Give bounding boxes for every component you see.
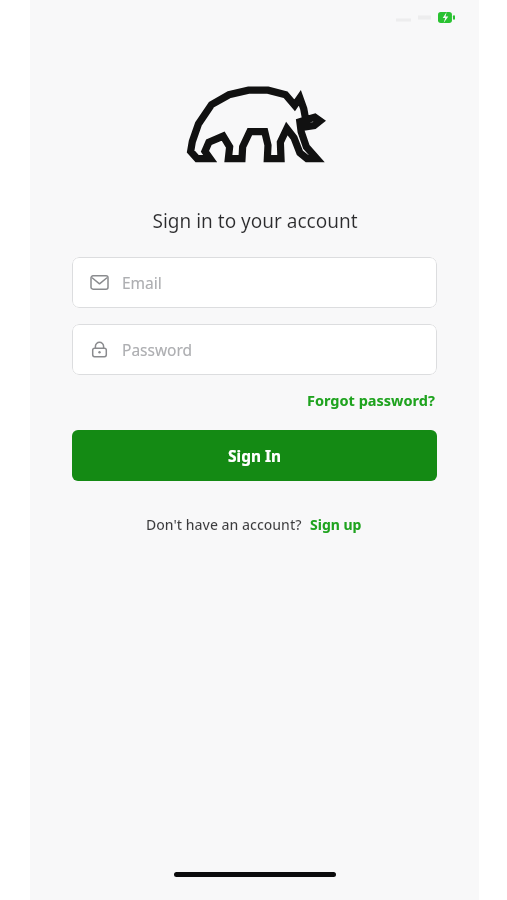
staticText: Don't have an account? bbox=[146, 515, 302, 534]
staticText: Forgot password? bbox=[307, 390, 435, 410]
button[interactable]: Sign up bbox=[308, 512, 364, 537]
other: Password bbox=[91, 341, 108, 358]
other: Email bbox=[91, 274, 108, 291]
button[interactable]: Sign In bbox=[72, 430, 437, 481]
staticText: Email bbox=[122, 272, 162, 293]
staticText: Sign in to your account bbox=[152, 208, 358, 234]
button[interactable]: Forgot password? bbox=[305, 387, 437, 413]
button[interactable]: Email bbox=[72, 257, 437, 308]
other: Bear logo bbox=[190, 86, 320, 162]
staticText: Password bbox=[122, 339, 193, 360]
staticText: Sign up bbox=[310, 515, 362, 534]
button[interactable]: Password bbox=[72, 324, 437, 375]
staticText: Sign In bbox=[228, 445, 282, 466]
